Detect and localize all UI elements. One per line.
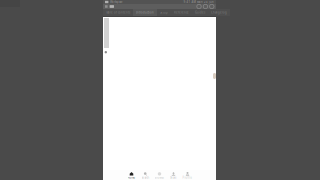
button[interactable]: Profile <box>180 170 194 180</box>
button[interactable]: Back <box>197 4 201 9</box>
button[interactable]: Changelog <box>208 9 230 16</box>
staticText: Profile <box>182 176 192 180</box>
button[interactable]: Share <box>166 170 180 180</box>
staticText: Changelog <box>211 11 227 14</box>
button[interactable]: Table of contents <box>103 9 133 16</box>
staticText: Guides <box>195 11 205 14</box>
button[interactable]: Share <box>203 4 208 9</box>
staticText: Setup <box>160 11 168 14</box>
button[interactable]: Browse <box>152 170 166 180</box>
button[interactable]: Search <box>138 170 152 180</box>
staticText: Search <box>141 176 149 180</box>
button[interactable]: Home <box>124 170 138 180</box>
staticText: Mon 24 Jun <box>197 0 214 4</box>
staticText: Home <box>127 176 135 180</box>
staticText: Share <box>170 176 177 180</box>
button[interactable]: Sidebar <box>105 5 108 8</box>
staticText: Introduction <box>136 11 154 14</box>
staticText: 9:41 AM <box>183 0 195 4</box>
button[interactable]: More <box>210 4 214 9</box>
button[interactable]: Introduction <box>133 9 157 16</box>
button[interactable]: Guides <box>192 9 208 16</box>
button[interactable]: Setup <box>157 9 171 16</box>
staticText: Browse <box>154 176 164 180</box>
button[interactable]: Reference <box>171 9 192 16</box>
staticText: Table of contents <box>106 11 130 14</box>
staticText: Workspace <box>110 0 123 4</box>
staticText: Reference <box>174 11 189 14</box>
button[interactable]: New tab <box>110 5 114 8</box>
